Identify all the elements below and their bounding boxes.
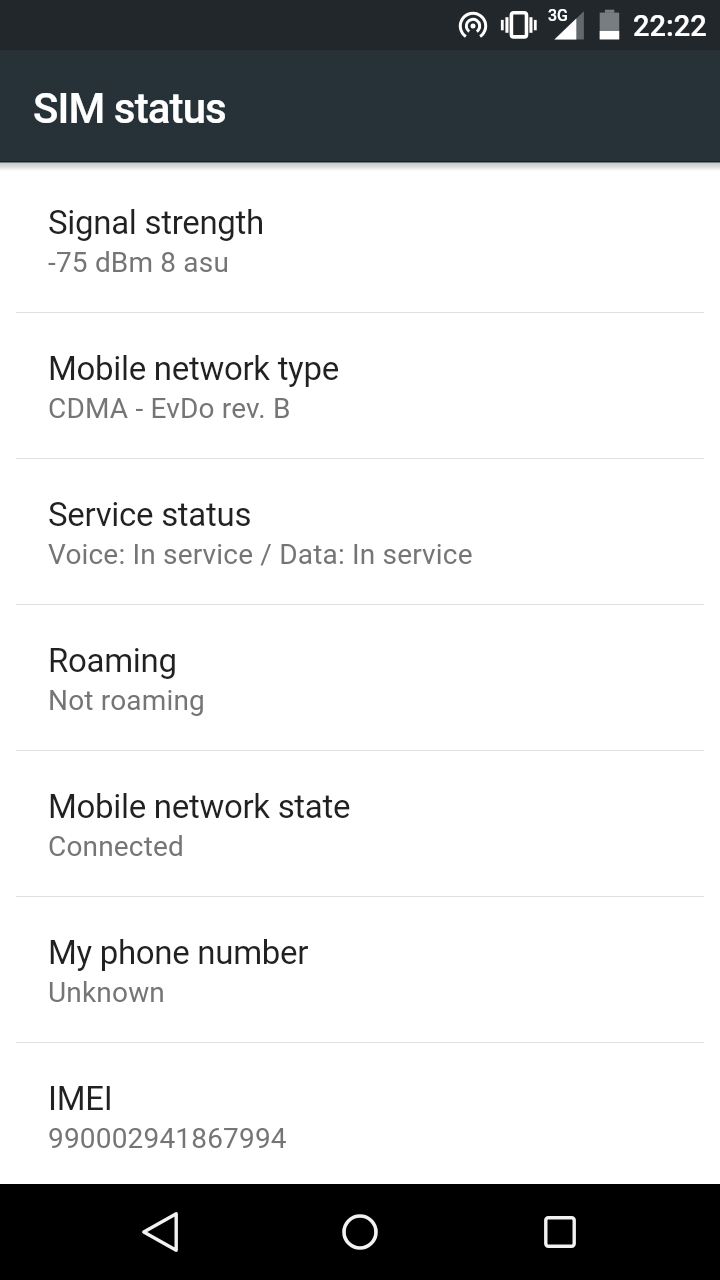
staticText: Not roaming (48, 684, 205, 717)
button[interactable]: Service status (0, 459, 720, 604)
staticText: -75 dBm 8 asu (48, 246, 230, 279)
button[interactable]: Mobile network state (0, 751, 720, 896)
staticText: Voice: In service / Data: In service (48, 538, 473, 571)
button[interactable]: Signal strength (0, 167, 720, 312)
staticText: Roaming (48, 641, 177, 680)
staticText: 3G (548, 6, 568, 25)
button[interactable]: My phone number (0, 897, 720, 1042)
button[interactable]: IMEI (0, 1043, 720, 1188)
staticText: Mobile network type (48, 349, 339, 388)
staticText: 22:22 (633, 9, 707, 43)
button[interactable]: Recent apps (460, 1184, 660, 1280)
button[interactable]: Back (60, 1184, 260, 1280)
staticText: Signal strength (48, 203, 264, 242)
staticText: My phone number (48, 933, 309, 972)
staticText: SIM status (33, 84, 226, 133)
staticText: Service status (48, 495, 252, 534)
staticText: Mobile network state (48, 787, 351, 826)
button[interactable]: Roaming (0, 605, 720, 750)
staticText: Connected (48, 830, 185, 863)
button[interactable]: Home (260, 1184, 460, 1280)
staticText: IMEI (48, 1079, 113, 1118)
staticText: 990002941867994 (48, 1122, 287, 1155)
button[interactable]: Mobile network type (0, 313, 720, 458)
staticText: CDMA - EvDo rev. B (48, 392, 291, 425)
staticText: Unknown (48, 976, 166, 1009)
